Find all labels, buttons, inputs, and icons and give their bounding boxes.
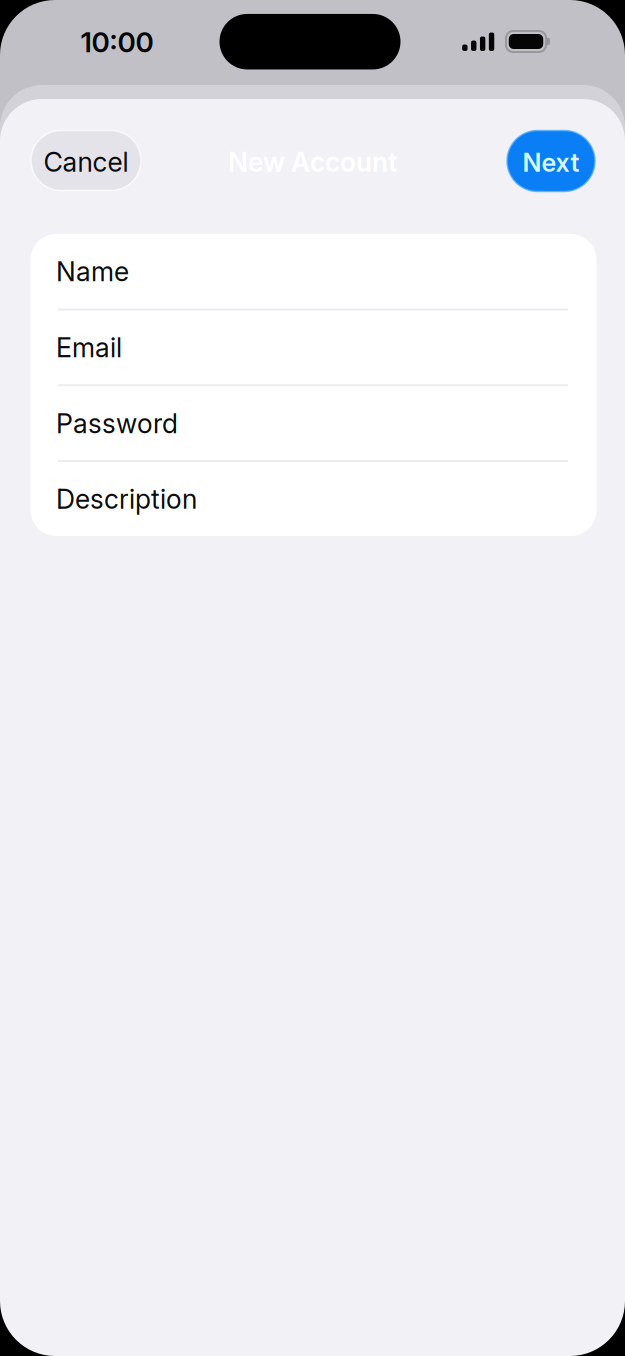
button[interactable]: Password [56,386,566,460]
staticText: New Account [228,146,397,178]
button[interactable]: Email [56,310,566,384]
staticText: Description [56,483,197,515]
staticText: Password [56,408,178,439]
button[interactable]: Name [56,234,566,308]
button[interactable]: Cancel [31,130,141,190]
button[interactable]: Next [507,130,595,191]
staticText: Next [522,148,579,177]
staticText: 10:00 [80,25,153,58]
button[interactable]: Description [56,462,566,536]
staticText: Cancel [43,146,128,178]
staticText: Email [56,332,122,363]
staticText: Name [56,256,129,287]
